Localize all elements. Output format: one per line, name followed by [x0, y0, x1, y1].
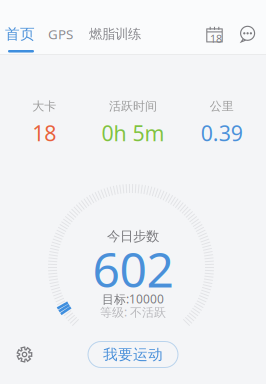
staticText: 等级: 不活跃: [100, 304, 166, 320]
staticText: GPS: [48, 25, 73, 43]
staticText: 活跃时间: [109, 99, 157, 114]
staticText: 今日步数: [107, 228, 159, 244]
button[interactable]: 我要运动: [88, 341, 178, 367]
button[interactable]: 首页: [0, 17, 41, 51]
staticText: 首页: [5, 25, 35, 43]
button[interactable]: Calendar: [201, 20, 228, 47]
staticText: 0.39: [201, 119, 243, 147]
staticText: 燃脂训练: [89, 26, 141, 42]
staticText: 18: [32, 119, 56, 147]
button[interactable]: Messages: [234, 20, 261, 47]
staticText: 目标:10000: [102, 291, 164, 307]
staticText: 18: [210, 31, 222, 46]
staticText: 602: [92, 237, 173, 301]
staticText: 大卡: [32, 99, 56, 114]
button[interactable]: GPS: [42, 17, 79, 51]
staticText: 我要运动: [103, 345, 163, 363]
button[interactable]: Settings: [8, 338, 41, 371]
staticText: 公里: [210, 99, 234, 114]
staticText: 0h 5m: [101, 119, 164, 147]
button[interactable]: 燃脂训练: [83, 18, 147, 50]
